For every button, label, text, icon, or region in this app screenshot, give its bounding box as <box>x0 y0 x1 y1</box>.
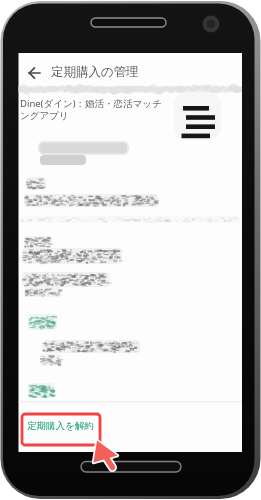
button[interactable] <box>25 61 45 83</box>
button[interactable] <box>28 314 57 330</box>
button[interactable] <box>174 93 221 140</box>
button[interactable]: 定期購入を解約 <box>24 416 98 443</box>
staticText: Dine(ダイン)：婚活・恋活マッチ ングアプリ <box>20 97 162 121</box>
button[interactable] <box>28 383 55 398</box>
staticText: 定期購入の管理 <box>51 64 139 80</box>
staticText: 定期購入を解約 <box>27 420 94 432</box>
